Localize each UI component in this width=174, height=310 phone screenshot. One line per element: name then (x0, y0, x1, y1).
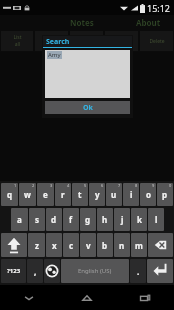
staticText: ?123 (7, 267, 21, 275)
staticText: Search (44, 38, 60, 45)
staticText: 7 (118, 183, 121, 188)
staticText: i (130, 189, 133, 200)
button[interactable]: i (123, 183, 139, 206)
staticText: d (51, 214, 57, 225)
button[interactable]: w (19, 183, 36, 206)
staticText: English (US) (78, 267, 112, 275)
staticText: 8 (135, 183, 138, 188)
button[interactable]: f (63, 208, 79, 231)
button[interactable]: c (63, 233, 79, 257)
button[interactable]: ?123 (1, 259, 26, 283)
staticText: o (146, 189, 151, 200)
button[interactable]: t (72, 183, 88, 206)
button[interactable]: List all (1, 31, 33, 51)
staticText: Search (46, 37, 70, 47)
staticText: z (35, 240, 39, 251)
button[interactable]: Ok (45, 101, 130, 114)
button[interactable]: v (80, 233, 96, 257)
button[interactable]: Back (0, 285, 58, 310)
staticText: h (102, 214, 108, 225)
button[interactable]: Search (35, 31, 68, 51)
button[interactable]: e (37, 183, 54, 206)
button[interactable]: Enter (147, 259, 173, 283)
staticText: t (78, 189, 82, 200)
staticText: m (135, 240, 143, 251)
staticText: 1 (14, 183, 17, 188)
staticText: f (69, 214, 73, 225)
button[interactable]: m (131, 233, 147, 257)
staticText: j (121, 214, 124, 225)
staticText: Amy (48, 51, 61, 59)
staticText: n (119, 240, 125, 251)
staticText: w (24, 189, 31, 200)
button[interactable]: Recent apps (116, 285, 174, 310)
staticText: 3 (50, 183, 53, 188)
button[interactable]: . (130, 259, 146, 283)
staticText: p (162, 189, 168, 200)
button[interactable]: Change language (44, 259, 60, 283)
button[interactable]: English (US) (61, 259, 129, 283)
button[interactable]: k (131, 208, 147, 231)
staticText: r (61, 189, 65, 200)
button[interactable]: d (46, 208, 62, 231)
button[interactable]: p (157, 183, 173, 206)
button[interactable]: q (1, 183, 18, 206)
button[interactable]: Create + (105, 31, 138, 51)
button[interactable]: Backspace (148, 233, 173, 257)
button[interactable]: n (114, 233, 130, 257)
button[interactable]: b (97, 233, 113, 257)
button[interactable]: l (148, 208, 164, 231)
button[interactable]: u (106, 183, 122, 206)
staticText: 9 (152, 183, 155, 188)
staticText: g (85, 214, 91, 225)
staticText: x (52, 240, 57, 251)
staticText: b (102, 240, 108, 251)
button[interactable]: r (55, 183, 71, 206)
staticText: , (34, 266, 37, 277)
button[interactable]: Home (58, 285, 116, 310)
staticText: v (86, 240, 91, 251)
staticText: 5 (84, 183, 87, 188)
staticText: 15:12 (147, 2, 171, 14)
staticText: List all (13, 34, 22, 48)
staticText: Notes (70, 17, 94, 28)
button[interactable]: j (114, 208, 130, 231)
button[interactable]: Shift (1, 233, 27, 257)
button[interactable]: o (140, 183, 156, 206)
staticText: 4 (67, 183, 70, 188)
staticText: About (136, 17, 161, 28)
button[interactable]: Create (70, 31, 103, 51)
button[interactable]: a (11, 208, 28, 231)
staticText: . (137, 266, 140, 277)
button[interactable]: z (28, 233, 45, 257)
staticText: 0 (169, 183, 172, 188)
button[interactable]: x (46, 233, 62, 257)
staticText: e (43, 189, 48, 200)
staticText: s (35, 214, 40, 225)
staticText: 6 (101, 183, 104, 188)
staticText: Delete (149, 38, 165, 45)
button[interactable]: Delete (140, 31, 173, 51)
button[interactable]: s (29, 208, 45, 231)
staticText: Create + (114, 34, 130, 48)
staticText: a (17, 214, 22, 225)
button[interactable]: h (97, 208, 113, 231)
staticText: q (7, 189, 13, 200)
staticText: 2 (32, 183, 35, 188)
staticText: k (137, 214, 142, 225)
button[interactable]: , (27, 259, 43, 283)
button[interactable]: g (80, 208, 96, 231)
staticText: Ok (83, 103, 93, 113)
staticText: c (69, 240, 74, 251)
staticText: l (155, 214, 158, 225)
button[interactable]: Amy (45, 50, 130, 98)
staticText: y (95, 189, 100, 200)
staticText: u (111, 189, 117, 200)
button[interactable]: y (89, 183, 105, 206)
